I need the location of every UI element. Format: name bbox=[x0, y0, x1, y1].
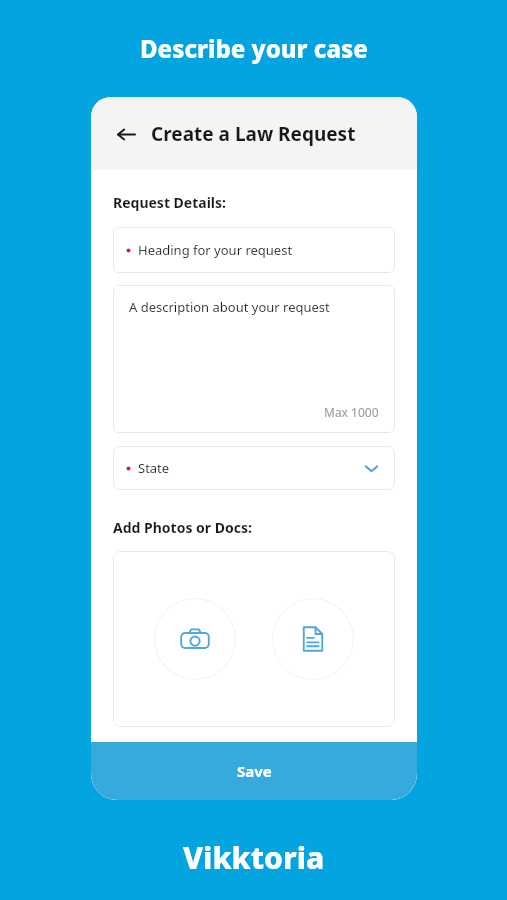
staticText: State bbox=[138, 459, 170, 477]
staticText: A description about your request bbox=[129, 298, 330, 316]
button[interactable]: Save bbox=[91, 742, 417, 800]
button[interactable]: Add photo bbox=[154, 598, 236, 680]
staticText: Request Details: bbox=[113, 193, 226, 212]
staticText: Max 1000 bbox=[324, 404, 379, 420]
button[interactable]: Back bbox=[111, 119, 141, 149]
button[interactable]: State bbox=[113, 446, 395, 490]
staticText: Heading for your request bbox=[138, 241, 293, 259]
staticText: Describe your case bbox=[140, 32, 368, 65]
button[interactable]: A description about your request bbox=[113, 285, 395, 433]
staticText: Add Photos or Docs: bbox=[113, 518, 252, 537]
staticText: Create a Law Request bbox=[151, 121, 356, 147]
button[interactable]: Heading for your request bbox=[113, 227, 395, 273]
button[interactable]: Add document bbox=[272, 598, 354, 680]
staticText: Save bbox=[237, 761, 272, 781]
staticText: Vikktoria bbox=[183, 837, 325, 878]
